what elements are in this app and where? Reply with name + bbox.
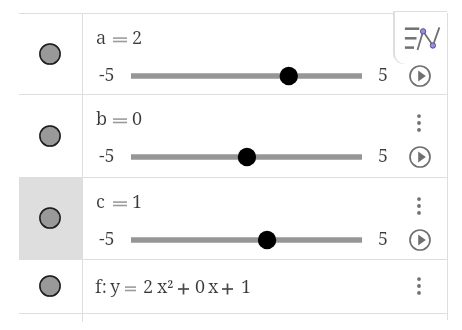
button[interactable] [19, 95, 448, 177]
button[interactable]: More options [405, 192, 433, 220]
staticText: 5 [378, 226, 389, 251]
button[interactable] [19, 14, 448, 94]
staticText: -5 [99, 226, 115, 251]
button[interactable] [19, 178, 448, 259]
staticText: 5 [378, 143, 389, 168]
button[interactable]: b slider [131, 147, 362, 167]
button[interactable]: Play animation [407, 63, 433, 89]
button[interactable]: Toggle graphics view [393, 11, 447, 64]
button[interactable]: More options [405, 272, 433, 300]
staticText: -5 [99, 62, 115, 87]
staticText: 0 [132, 106, 143, 131]
button[interactable]: More options [405, 109, 433, 137]
staticText: y [110, 274, 121, 299]
button[interactable]: More options [405, 28, 433, 56]
staticText: 0 [195, 274, 206, 299]
staticText: x [208, 274, 219, 299]
staticText: 2 [132, 25, 143, 50]
staticText: f: [95, 274, 107, 299]
staticText: 1 [132, 189, 143, 214]
staticText: 5 [378, 62, 389, 87]
staticText: c [96, 189, 105, 214]
staticText: a [96, 25, 107, 50]
button[interactable]: a slider [131, 66, 362, 86]
staticText: b [96, 106, 108, 131]
staticText: 2 [143, 274, 154, 299]
staticText: x2 [157, 274, 174, 299]
button[interactable]: c slider [131, 230, 362, 250]
button[interactable]: Play animation [407, 144, 433, 170]
button[interactable]: Play animation [407, 227, 433, 253]
button[interactable] [19, 260, 448, 313]
staticText: 1 [241, 274, 252, 299]
staticText: -5 [99, 143, 115, 168]
